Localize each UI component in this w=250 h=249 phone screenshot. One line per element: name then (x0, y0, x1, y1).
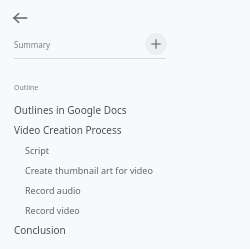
staticText: Outlines in Google Docs (14, 103, 127, 117)
button[interactable]: Video Creation Process (0, 120, 250, 140)
staticText: Script (25, 144, 50, 156)
staticText: Create thumbnail art for video (25, 164, 153, 176)
staticText: Record audio (25, 184, 81, 196)
staticText: Video Creation Process (14, 123, 122, 137)
staticText: Summary (14, 39, 51, 50)
button[interactable]: Conclusion (0, 220, 250, 240)
button[interactable]: Add summary (145, 33, 167, 55)
button[interactable]: Outlines in Google Docs (0, 100, 250, 120)
staticText: Record video (25, 204, 80, 216)
button[interactable]: Script (0, 140, 250, 160)
button[interactable]: Record video (0, 200, 250, 220)
button[interactable]: Record audio (0, 180, 250, 200)
button[interactable]: Back (8, 6, 32, 30)
staticText: Conclusion (14, 223, 66, 237)
staticText: Outline (14, 83, 39, 93)
button[interactable]: Create thumbnail art for video (0, 160, 250, 180)
